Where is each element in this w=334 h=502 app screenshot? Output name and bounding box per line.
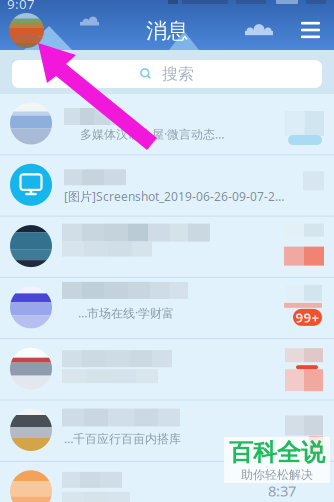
button[interactable]: [0, 462, 334, 502]
button[interactable]: [0, 339, 334, 400]
button[interactable]: …市场在线·学财富: [0, 278, 334, 339]
button[interactable]: …千百应行百亩内搭库: [0, 400, 334, 462]
button[interactable]: 搜索: [12, 60, 322, 88]
staticText: 99+: [295, 308, 319, 326]
staticText: …市场在线·学财富: [78, 305, 174, 321]
staticText: 9:07: [7, 0, 35, 13]
staticText: 助你轻松解决: [241, 467, 313, 482]
staticText: 多媒体汉语小屋·微言动态…: [80, 126, 224, 142]
staticText: …千百应行百亩内搭库: [64, 430, 181, 446]
button[interactable]: [图片]Screenshot_2019-06-26-09-07-27…: [0, 155, 334, 217]
staticText: 百科全说: [229, 438, 325, 467]
button[interactable]: [0, 217, 334, 278]
staticText: 8:37: [268, 481, 296, 500]
staticText: 搜索: [152, 64, 194, 84]
button[interactable]: Menu: [301, 22, 320, 38]
button[interactable]: Profile: [9, 13, 44, 48]
staticText: 消息: [146, 18, 188, 44]
button[interactable]: 多媒体汉语小屋·微言动态…: [0, 94, 334, 155]
staticText: [图片]Screenshot_2019-06-26-09-07-27…: [64, 188, 284, 204]
